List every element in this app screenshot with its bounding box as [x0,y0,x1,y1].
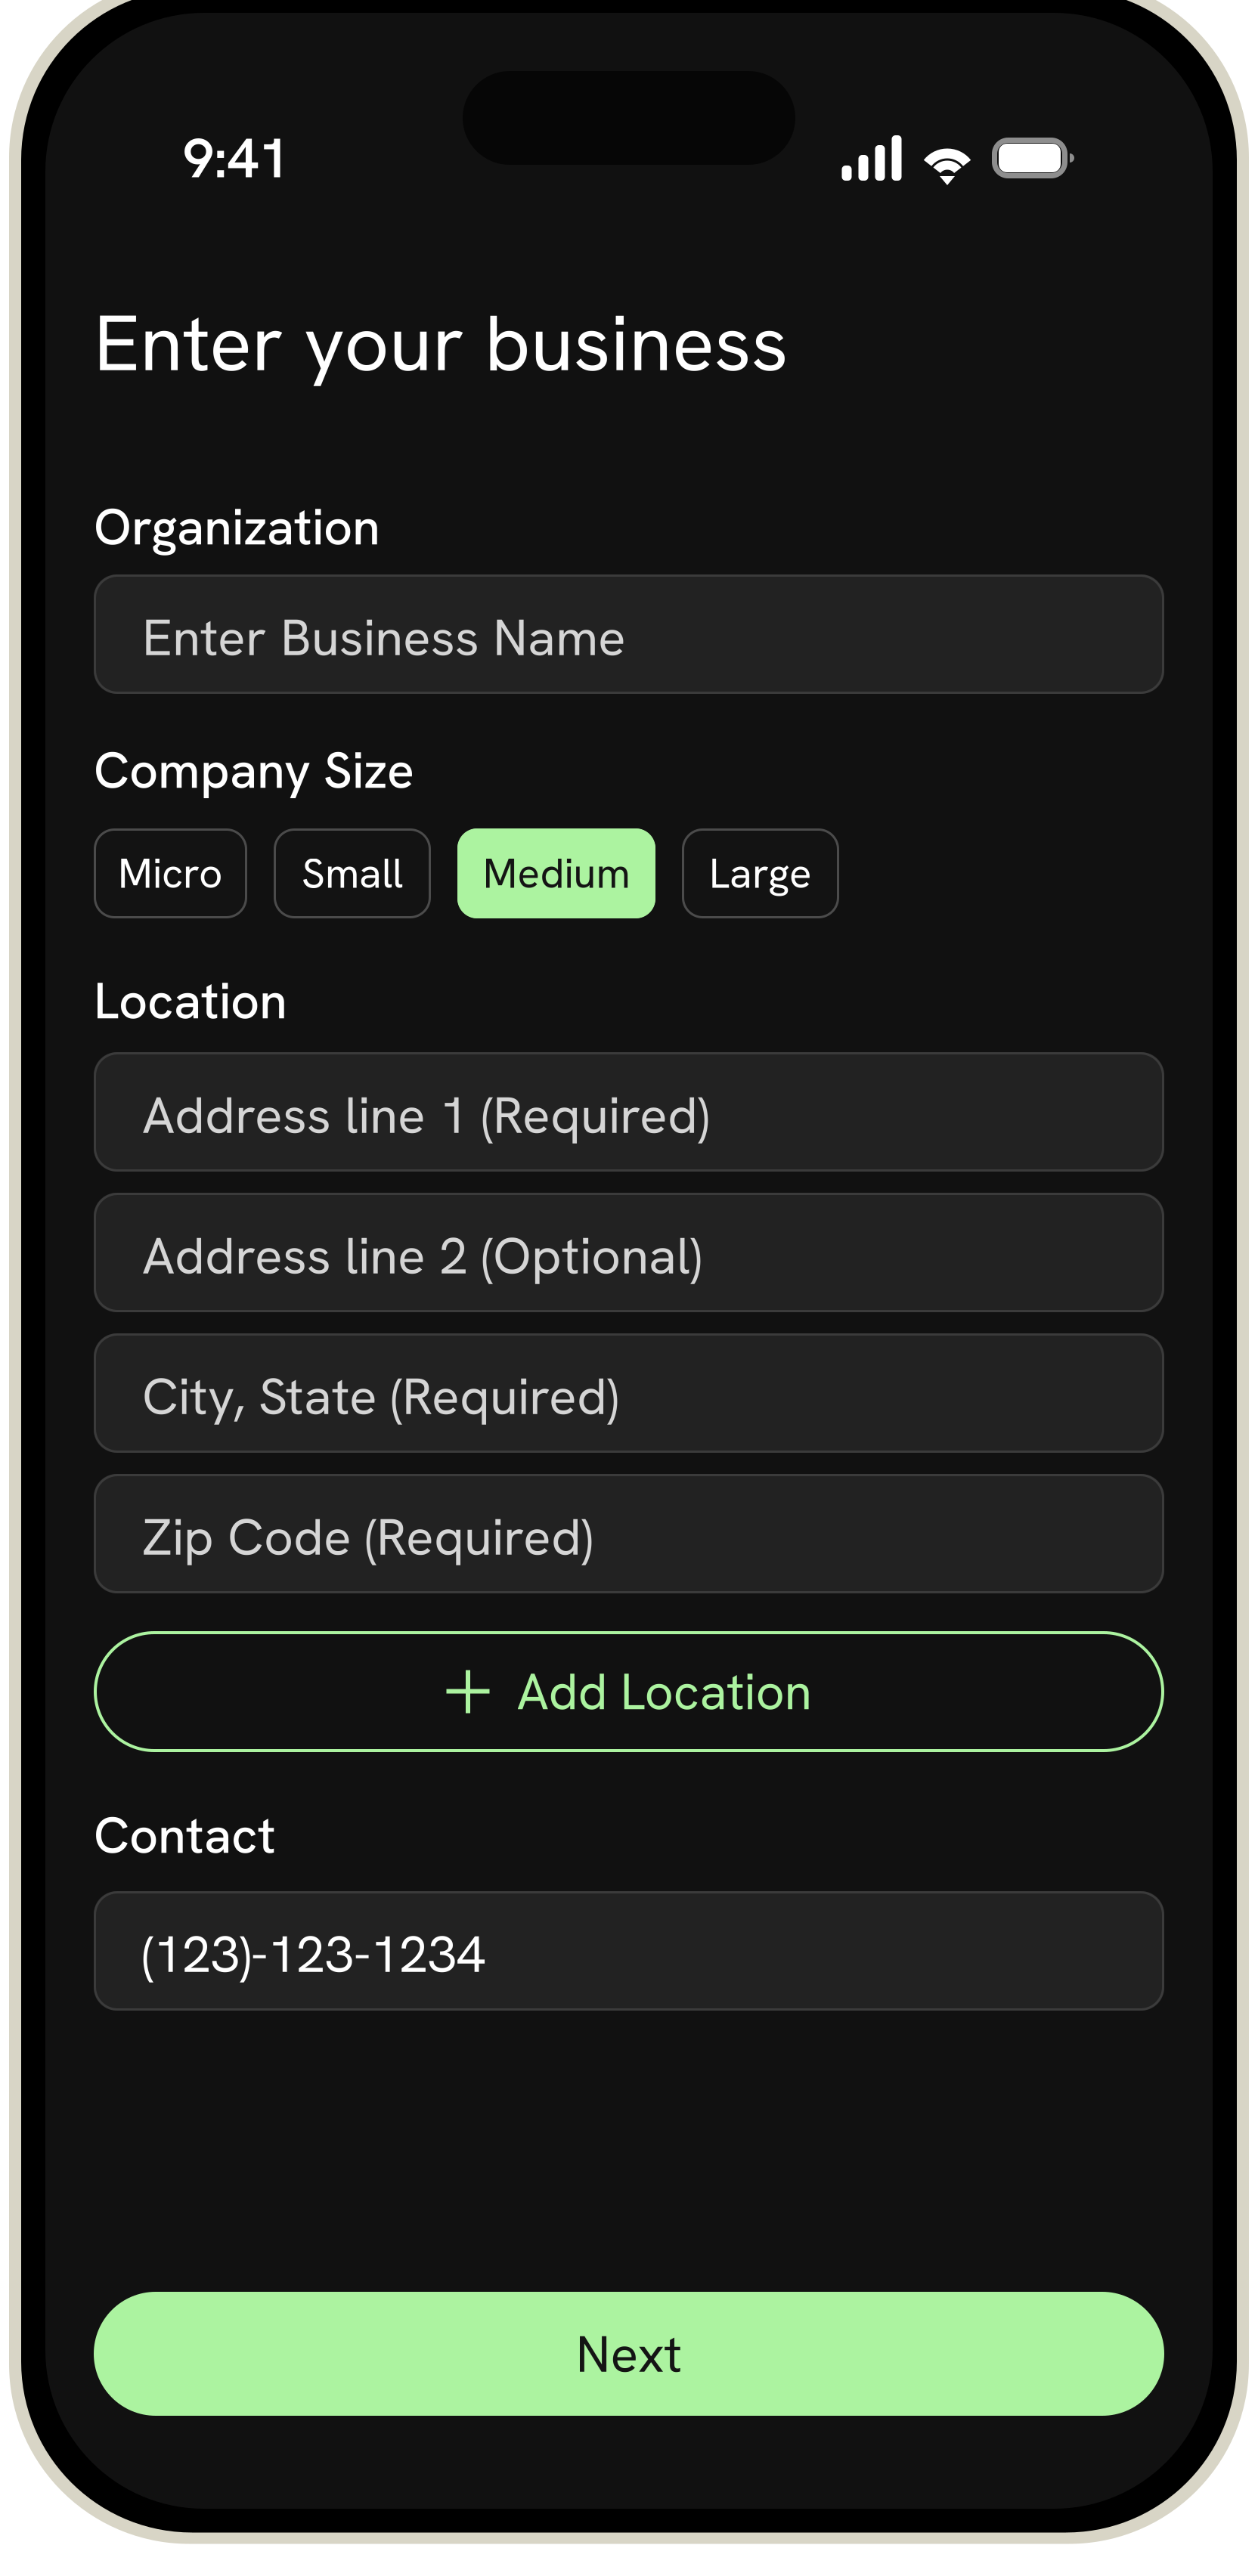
staticText: Contact [94,1802,276,1868]
staticText: Enter Business Name [142,604,626,671]
button[interactable]: Address line 2 (Optional) [94,1193,1164,1312]
button[interactable]: (123)-123-1234 [94,1891,1164,2011]
staticText: Zip Code (Required) [142,1503,593,1570]
button[interactable]: Large [682,828,839,918]
button[interactable]: City, State (Required) [94,1333,1164,1453]
button[interactable]: Add Location [94,1631,1164,1752]
button[interactable]: Small [274,828,431,918]
staticText: 9:41 [183,122,290,194]
button[interactable]: Enter Business Name [94,574,1164,694]
staticText: Next [576,2320,682,2387]
staticText: Large [709,846,812,900]
staticText: Address line 2 (Optional) [142,1222,702,1289]
staticText: Address line 1 (Required) [142,1081,709,1148]
staticText: Organization [94,494,380,560]
staticText: City, State (Required) [142,1363,618,1430]
button[interactable]: Zip Code (Required) [94,1474,1164,1593]
staticText: Location [94,968,287,1034]
staticText: (123)-123-1234 [142,1920,485,1987]
button[interactable]: Medium [457,828,655,918]
staticText: Enter your business [94,292,789,394]
staticText: Medium [483,846,630,900]
staticText: Small [302,846,403,900]
staticText: Micro [118,846,223,900]
staticText: Company Size [94,737,414,803]
button[interactable]: Next [94,2292,1164,2416]
button[interactable]: Micro [94,828,247,918]
staticText: Add Location [517,1659,812,1725]
button[interactable]: Address line 1 (Required) [94,1052,1164,1172]
